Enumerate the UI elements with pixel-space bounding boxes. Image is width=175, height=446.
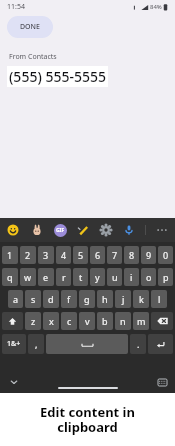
staticText: 0 [163, 249, 169, 261]
staticText: u [112, 271, 118, 283]
staticText: e [43, 271, 49, 283]
button[interactable]: k [133, 290, 149, 308]
button[interactable]: x [43, 312, 59, 330]
staticText: b [102, 315, 108, 327]
staticText: d [48, 293, 54, 305]
button[interactable]: s [25, 290, 41, 308]
staticText: l [158, 293, 161, 305]
button[interactable]: Handwriting [76, 223, 90, 237]
staticText: o [146, 271, 152, 283]
staticText: 5 [78, 249, 84, 261]
button[interactable]: y [90, 268, 105, 286]
staticText: c [67, 315, 72, 327]
button[interactable]: Emoji [6, 223, 20, 237]
staticText: g [84, 293, 90, 305]
button[interactable]: w [20, 268, 36, 286]
staticText: , [35, 338, 38, 350]
button[interactable]: f [61, 290, 77, 308]
button[interactable]: GIF [54, 224, 67, 237]
button[interactable]: Shift [2, 312, 23, 330]
button[interactable]: Voice input [122, 223, 136, 237]
staticText: 1&+ [7, 339, 21, 349]
button[interactable]: b [97, 312, 113, 330]
staticText: w [24, 271, 32, 283]
button[interactable]: t [73, 268, 88, 286]
button[interactable]: Backspace [151, 312, 173, 330]
staticText: t [79, 271, 83, 283]
staticText: 9 [146, 249, 152, 261]
button[interactable]: Enter [148, 334, 173, 354]
button[interactable]: p [158, 268, 173, 286]
button[interactable]: u [107, 268, 122, 286]
button[interactable]: Hide keyboard [8, 376, 20, 388]
button[interactable]: q [2, 268, 18, 286]
staticText: 2 [25, 249, 31, 261]
staticText: k [139, 293, 144, 305]
button[interactable]: d [43, 290, 59, 308]
button[interactable]: More options [155, 223, 169, 237]
button[interactable]: 7 [107, 246, 122, 264]
staticText: f [67, 293, 71, 305]
button[interactable]: Change keyboard [156, 376, 168, 388]
staticText: GIF [56, 227, 65, 234]
staticText: Edit content in clipboard [40, 403, 135, 436]
button[interactable]: m [133, 312, 149, 330]
button[interactable]: 6 [90, 246, 105, 264]
button[interactable]: e [38, 268, 54, 286]
button[interactable]: 0 [158, 246, 173, 264]
staticText: q [7, 271, 13, 283]
button[interactable]: 9 [141, 246, 156, 264]
staticText: 4 [61, 249, 67, 261]
staticText: v [85, 315, 90, 327]
button[interactable]: Settings [99, 223, 113, 237]
button[interactable]: g [79, 290, 95, 308]
staticText: r [62, 271, 66, 283]
button[interactable]: c [61, 312, 77, 330]
button[interactable]: Space [46, 334, 128, 354]
staticText: 7 [112, 249, 118, 261]
staticText: m [137, 315, 146, 327]
staticText: 6 [95, 249, 101, 261]
button[interactable]: a [8, 290, 23, 308]
staticText: z [31, 315, 36, 327]
staticText: x [49, 315, 54, 327]
button[interactable]: j [115, 290, 131, 308]
button[interactable]: z [25, 312, 41, 330]
button[interactable]: 4 [56, 246, 71, 264]
button[interactable]: v [79, 312, 95, 330]
staticText: 1 [7, 249, 13, 261]
staticText: j [122, 293, 125, 305]
button[interactable]: 5 [73, 246, 88, 264]
button[interactable]: n [115, 312, 131, 330]
button[interactable]: h [97, 290, 113, 308]
staticText: 84% [150, 3, 162, 11]
staticText: 11:54 [7, 2, 25, 12]
staticText: From Contacts [9, 52, 57, 62]
staticText: (555) 555-5555 [9, 67, 106, 86]
button[interactable]: i [124, 268, 139, 286]
button[interactable]: . [130, 334, 146, 354]
button[interactable]: r [56, 268, 71, 286]
button[interactable]: Stickers [30, 223, 44, 237]
button[interactable]: 8 [124, 246, 139, 264]
staticText: h [102, 293, 108, 305]
staticText: n [120, 315, 126, 327]
button[interactable]: 1 [2, 246, 18, 264]
button[interactable]: o [141, 268, 156, 286]
staticText: . [137, 338, 140, 350]
button[interactable]: 3 [38, 246, 54, 264]
staticText: s [31, 293, 36, 305]
button[interactable]: l [151, 290, 167, 308]
staticText: 8 [129, 249, 135, 261]
staticText: a [13, 293, 19, 305]
staticText: p [163, 271, 169, 283]
staticText: 3 [43, 249, 49, 261]
staticText: i [130, 271, 133, 283]
button[interactable]: DONE [7, 16, 53, 38]
button[interactable]: 2 [20, 246, 36, 264]
button[interactable]: , [28, 334, 44, 354]
staticText: DONE [20, 22, 40, 32]
staticText: y [95, 271, 100, 283]
button[interactable]: 1&+ [2, 334, 26, 354]
